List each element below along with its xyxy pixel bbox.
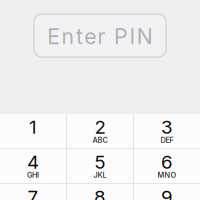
staticText: 5 bbox=[94, 151, 105, 173]
staticText: 3 bbox=[161, 116, 173, 138]
staticText: 7 bbox=[27, 186, 38, 200]
button[interactable]: Enter PIN bbox=[34, 14, 166, 57]
staticText: GHI bbox=[27, 171, 39, 179]
staticText: DEF bbox=[160, 136, 173, 144]
staticText: 4 bbox=[27, 151, 39, 173]
staticText: 2 bbox=[94, 116, 105, 138]
staticText: 6 bbox=[161, 151, 173, 173]
staticText: ABC bbox=[92, 136, 107, 144]
button[interactable]: 2 bbox=[67, 114, 133, 148]
staticText: 1 bbox=[29, 116, 37, 138]
button[interactable]: 8 bbox=[67, 184, 133, 200]
button[interactable]: 9 bbox=[134, 184, 200, 200]
button[interactable]: 1 bbox=[0, 114, 66, 148]
button[interactable]: 6 bbox=[134, 149, 200, 183]
staticText: MNO bbox=[157, 171, 176, 179]
button[interactable]: 7 bbox=[0, 184, 66, 200]
button[interactable]: 5 bbox=[67, 149, 133, 183]
staticText: Enter PIN bbox=[47, 24, 153, 49]
staticText: 8 bbox=[94, 186, 106, 200]
button[interactable]: 3 bbox=[134, 114, 200, 148]
button[interactable]: 4 bbox=[0, 149, 66, 183]
staticText: JKL bbox=[93, 171, 106, 179]
staticText: 9 bbox=[161, 186, 173, 200]
